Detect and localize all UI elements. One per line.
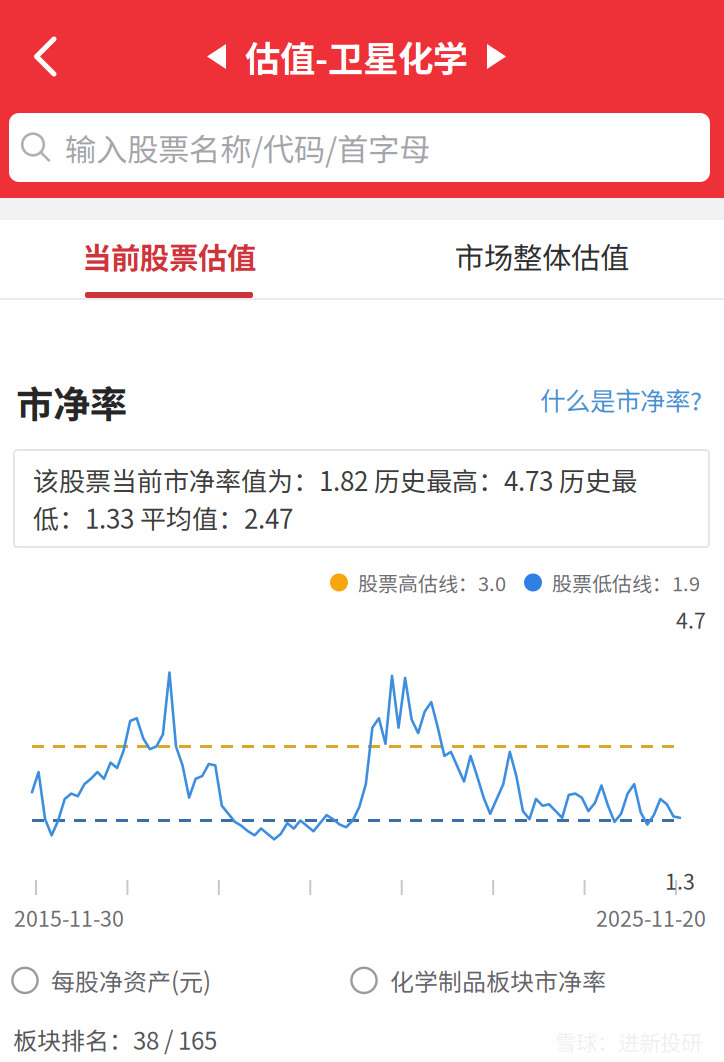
button[interactable]: 估值-卫星化学 <box>207 21 517 92</box>
staticText: 股票高估线： <box>358 568 478 597</box>
staticText: 股票低估线： <box>552 568 672 597</box>
staticText: 1.3 <box>665 865 695 896</box>
button[interactable]: 化学制品板块市净率 <box>350 963 606 998</box>
staticText: 1.9 <box>672 568 700 597</box>
staticText: 化学制品板块市净率 <box>390 963 606 998</box>
staticText: 3.0 <box>478 568 506 597</box>
staticText: 什么是市净率? <box>540 381 702 418</box>
staticText: 估值-卫星化学 <box>245 31 468 82</box>
button[interactable]: 输入股票名称/代码/首字母 <box>9 113 710 182</box>
button[interactable]: 市场整体估值 <box>338 220 724 298</box>
button[interactable]: Back <box>0 20 86 93</box>
staticText: 4.7 <box>676 604 706 635</box>
button[interactable]: 当前股票估值 <box>0 220 338 298</box>
staticText: 2015-11-30 <box>14 902 124 933</box>
staticText: 雪球：进新投研 <box>555 1026 702 1057</box>
staticText: 市净率 <box>16 375 127 429</box>
button[interactable]: 每股净资产(元) <box>11 963 211 998</box>
staticText: 输入股票名称/代码/首字母 <box>65 125 430 170</box>
staticText: 每股净资产(元) <box>51 963 211 998</box>
staticText: 该股票当前市净率值为：1.82 历史最高：4.73 历史最低：1.33 平均值：… <box>33 461 637 536</box>
staticText: 当前股票估值 <box>82 235 256 277</box>
staticText: 市场整体估值 <box>455 235 629 277</box>
staticText: 板块排名：38 / 165 <box>13 1022 217 1057</box>
staticText: 2025-11-20 <box>596 902 706 933</box>
button[interactable]: 什么是市净率? <box>540 381 702 418</box>
